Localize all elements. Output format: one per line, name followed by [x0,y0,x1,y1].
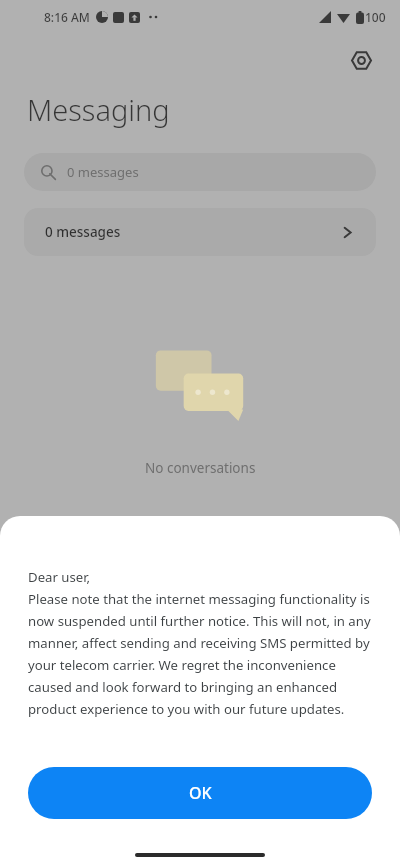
button[interactable]: 0 messages [24,208,376,256]
staticText: 100 [365,9,386,25]
staticText: Messaging [27,90,170,129]
staticText: No conversations [145,459,256,477]
button[interactable]: OK [28,767,372,819]
button[interactable]: 0 messages [24,153,376,191]
staticText: Dear user, Please note that the internet… [28,568,372,718]
staticText: 0 messages [45,223,341,241]
staticText: 0 messages [67,163,139,181]
staticText: 8:16 AM [44,9,90,25]
button[interactable]: Settings [344,43,378,77]
staticText: OK [189,782,212,804]
